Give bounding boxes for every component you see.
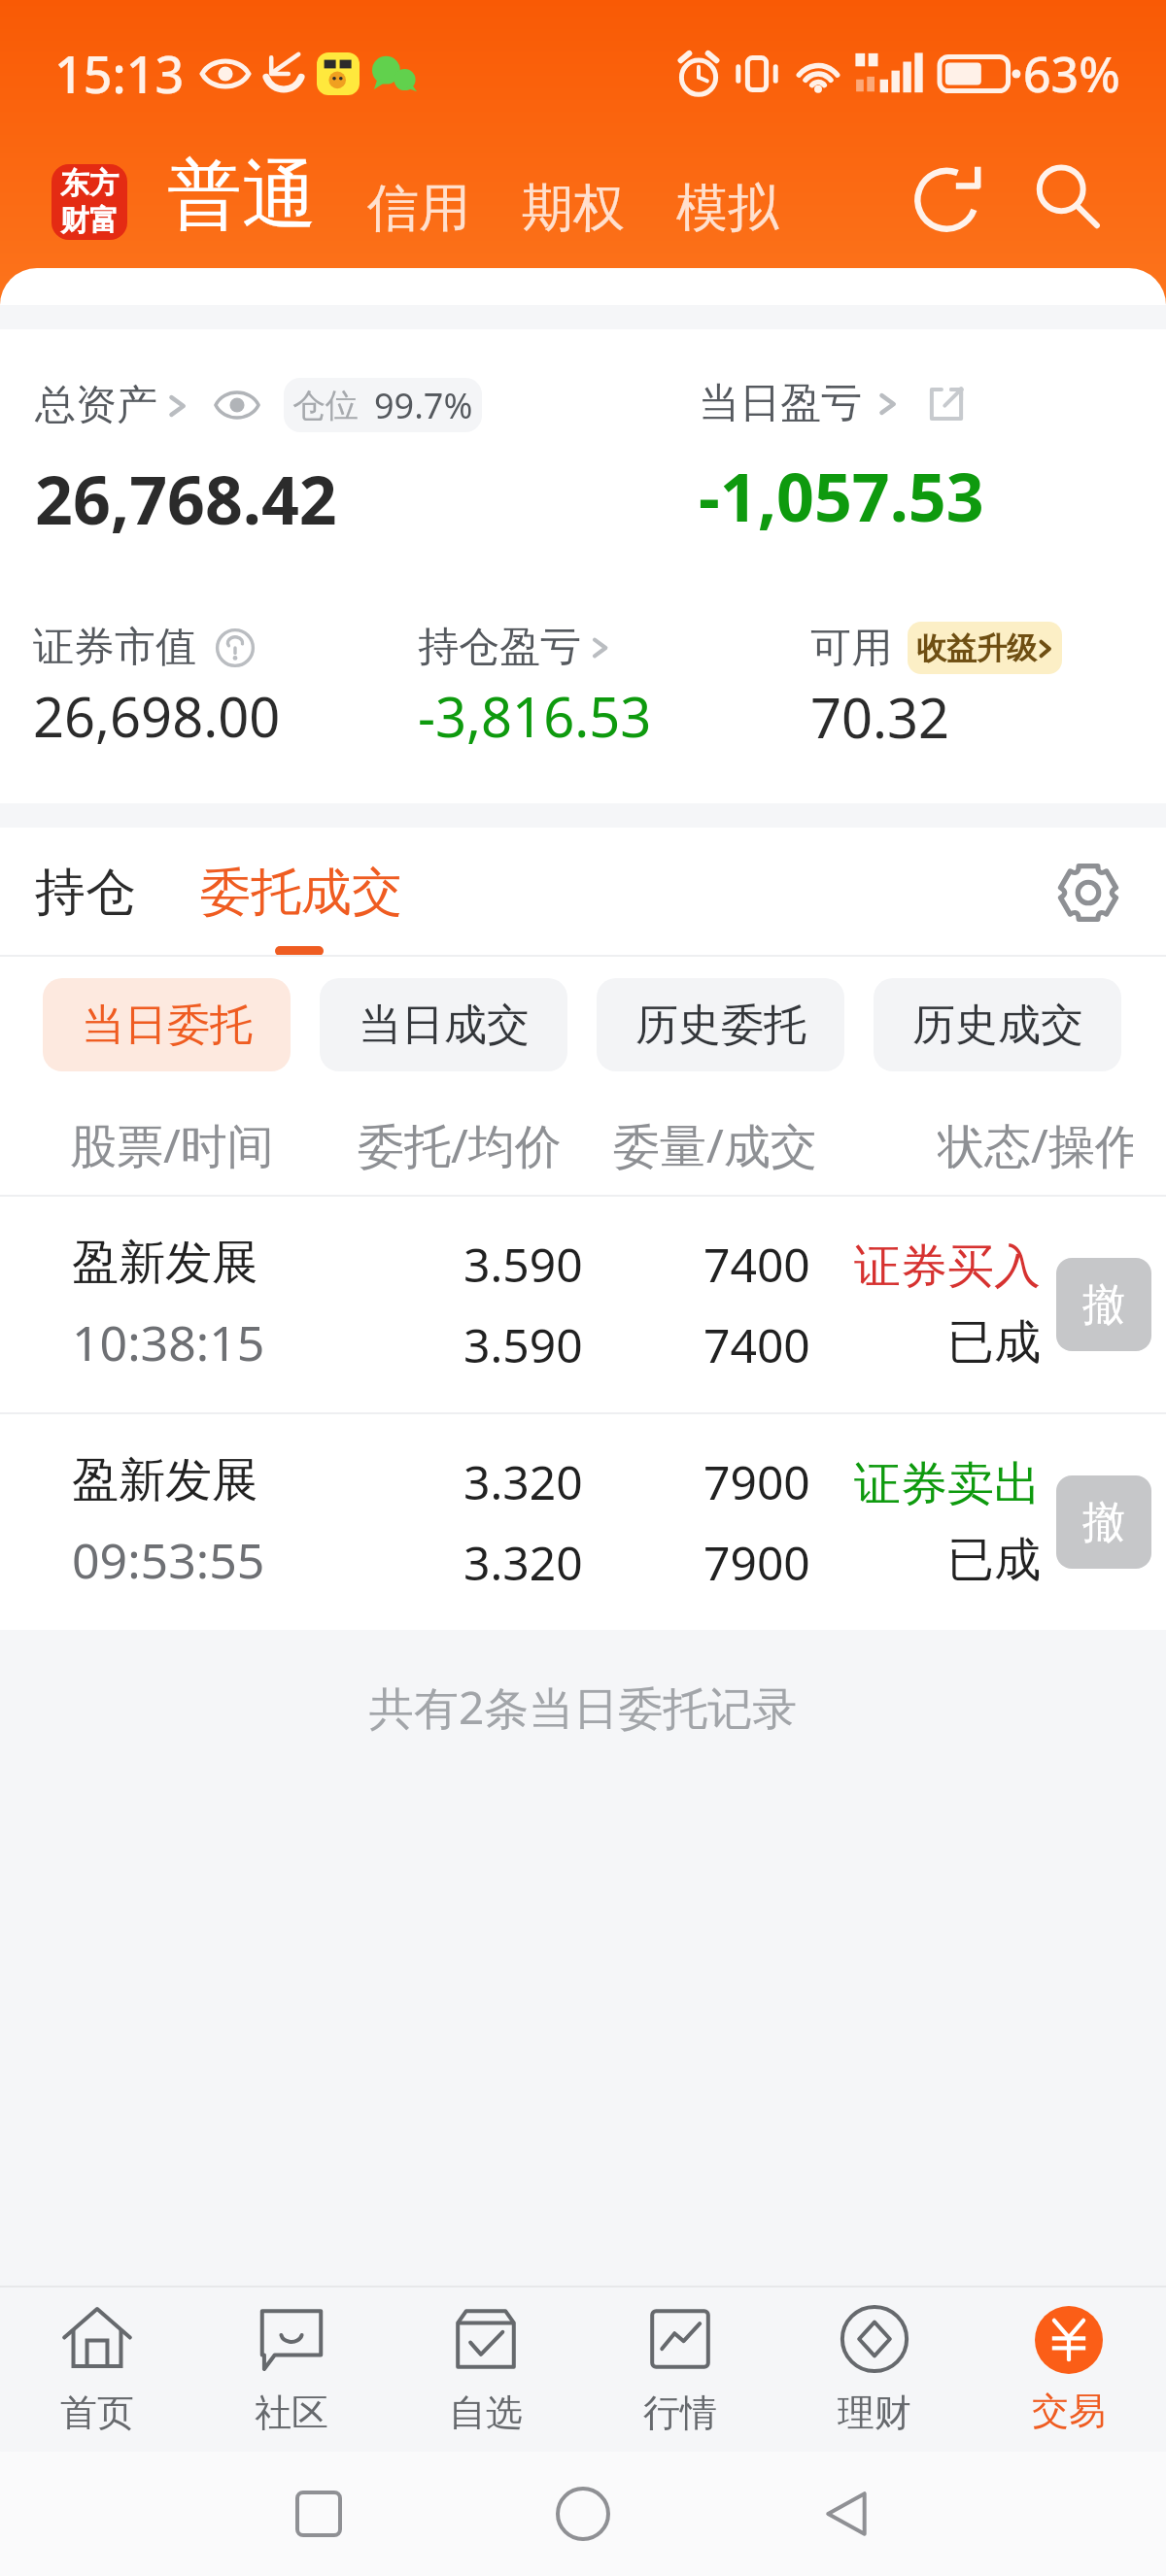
button[interactable]: Refresh [908, 155, 991, 239]
staticText: 99.7% [374, 382, 473, 429]
staticText: 委托/均价 [358, 1113, 562, 1177]
button[interactable]: 总资产 [35, 380, 190, 431]
button[interactable]: 持仓 [23, 845, 148, 940]
staticText: 证券市值 [33, 622, 196, 673]
button[interactable]: 收益升级 [908, 622, 1062, 674]
staticText: 撤 [1082, 1278, 1125, 1332]
button[interactable]: Home [541, 2472, 625, 2556]
staticText: 历史成交 [912, 999, 1083, 1052]
staticText: 总资产 [35, 380, 157, 431]
staticText: 70.32 [810, 680, 950, 754]
button[interactable]: 自选 [389, 2288, 583, 2452]
staticText: 10:38:15 [72, 1309, 265, 1375]
staticText: 自选 [449, 2390, 523, 2436]
staticText: 信用 [367, 176, 470, 241]
button[interactable]: 历史委托 [597, 978, 844, 1071]
staticText: 首页 [60, 2390, 134, 2436]
button[interactable]: 当日成交 [320, 978, 567, 1071]
button[interactable]: 理财 [777, 2288, 972, 2452]
button[interactable]: 行情 [583, 2288, 777, 2452]
staticText: 撤 [1082, 1496, 1125, 1549]
staticText: 委量/成交 [613, 1113, 817, 1177]
staticText: 证券卖出 [854, 1455, 1041, 1513]
button[interactable]: 撤 [1056, 1258, 1151, 1351]
staticText: -1,057.53 [699, 451, 984, 541]
staticText: 可用 [810, 623, 892, 674]
staticText: 当日成交 [359, 999, 530, 1052]
staticText: 委托成交 [200, 861, 402, 925]
staticText: 26,768.42 [35, 454, 337, 544]
button[interactable]: 仓位 [284, 378, 482, 432]
button[interactable]: 盈新发展 [0, 1414, 1166, 1630]
staticText: 状态/操作 [938, 1113, 1133, 1177]
staticText: 当日委托 [82, 999, 253, 1052]
staticText: 09:53:55 [72, 1527, 265, 1593]
button[interactable]: Back [806, 2472, 889, 2556]
staticText: 当日盈亏 [699, 378, 862, 429]
button[interactable]: 当日盈亏 [699, 378, 901, 429]
button[interactable]: Open detail [926, 384, 967, 424]
staticText: 3.320 [463, 1450, 583, 1513]
button[interactable]: Search [1026, 155, 1110, 239]
button[interactable]: 当日委托 [43, 978, 291, 1071]
staticText: 模拟 [676, 176, 779, 241]
staticText: 持仓盈亏 [418, 622, 581, 673]
staticText: 盈新发展 [72, 1451, 258, 1509]
staticText: 行情 [643, 2390, 717, 2436]
staticText: 收益升级 [916, 629, 1037, 667]
staticText: 3.320 [463, 1531, 583, 1594]
staticText: 交易 [1032, 2388, 1106, 2434]
button[interactable]: 首页 [0, 2288, 194, 2452]
staticText: 3.590 [463, 1313, 583, 1376]
button[interactable]: 委托成交 [189, 845, 414, 940]
staticText: 7400 [703, 1313, 810, 1376]
staticText: 期权 [522, 176, 625, 241]
staticText: 已成 [947, 1313, 1041, 1372]
staticText: 26,698.00 [33, 679, 281, 753]
button[interactable]: Toggle visibility [214, 388, 260, 423]
button[interactable]: 社区 [194, 2288, 389, 2452]
button[interactable]: 盈新发展 [0, 1197, 1166, 1412]
staticText: 财富 [60, 202, 119, 239]
staticText: 3.590 [463, 1233, 583, 1296]
staticText: 7400 [703, 1233, 810, 1296]
staticText: 63% [1023, 41, 1120, 107]
button[interactable]: 交易 [972, 2288, 1166, 2452]
staticText: 共有2条当日委托记录 [369, 1677, 798, 1738]
staticText: 历史委托 [635, 999, 806, 1052]
button[interactable]: Recents [277, 2472, 360, 2556]
button[interactable]: 普通 [167, 149, 317, 243]
button[interactable]: 期权 [522, 176, 625, 241]
button[interactable]: Settings [1049, 854, 1127, 932]
staticText: 仓位 [292, 385, 359, 426]
staticText: 7900 [703, 1450, 810, 1513]
staticText: 理财 [838, 2390, 911, 2436]
staticText: 股票/时间 [70, 1113, 274, 1177]
staticText: 已成 [947, 1531, 1041, 1589]
staticText: 社区 [255, 2390, 328, 2436]
staticText: 7900 [703, 1531, 810, 1594]
button[interactable]: 撤 [1056, 1475, 1151, 1569]
staticText: 证券买入 [854, 1237, 1041, 1296]
button[interactable]: 历史成交 [874, 978, 1121, 1071]
staticText: 盈新发展 [72, 1234, 258, 1292]
button[interactable]: 信用 [367, 176, 470, 241]
button[interactable]: 模拟 [676, 176, 779, 241]
button[interactable]: 持仓盈亏 [418, 622, 612, 673]
staticText: 15:13 [54, 39, 185, 108]
staticText: 东方 [60, 165, 119, 202]
staticText: 普通 [167, 149, 317, 243]
staticText: -3,816.53 [418, 679, 652, 753]
staticText: 持仓 [35, 861, 136, 925]
